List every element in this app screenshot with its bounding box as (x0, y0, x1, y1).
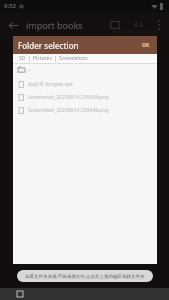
staticText: OK (142, 42, 150, 49)
button[interactable]: Confirm (140, 39, 152, 51)
staticText: .. (28, 66, 31, 73)
button[interactable]: Recents (14, 288, 26, 300)
button[interactable]: Screenshots (56, 55, 91, 62)
button[interactable]: More options (151, 17, 167, 33)
button[interactable]: Screenshot_20230614-205508.png (13, 91, 157, 104)
button[interactable]: Back (0, 12, 26, 38)
button[interactable]: .. (13, 64, 157, 75)
staticText: Screenshots (59, 55, 88, 62)
staticText: Ap日常 longest.apk (28, 81, 73, 88)
staticText: Pictures (33, 55, 52, 62)
button[interactable]: Screenshot_20230614-205648.png (13, 104, 157, 117)
staticText: 这是文件夹选择,不能选择文件,点击右上角的确定选择文件夹 (25, 273, 145, 279)
staticText: Screenshot_20230614-205648.png (28, 107, 109, 114)
staticText: Screenshot_20230614-205508.png (28, 94, 109, 101)
staticText: SD (19, 55, 26, 62)
staticText: Folder selection (18, 40, 79, 51)
button[interactable]: Select folder (103, 13, 127, 37)
button[interactable]: Sort (127, 13, 151, 37)
staticText: import books (26, 19, 83, 31)
staticText: 9:52 (4, 2, 16, 10)
button[interactable]: Pictures (30, 55, 55, 62)
button[interactable]: SD (16, 55, 29, 62)
button[interactable]: Ap日常 longest.apk (13, 78, 157, 91)
staticText: A↓ (134, 20, 145, 30)
